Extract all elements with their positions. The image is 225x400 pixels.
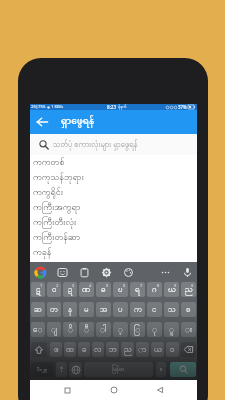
- button[interactable]: Numbers and symbols: [31, 362, 54, 377]
- staticText: 1: [40, 283, 43, 288]
- staticText: သတ်ပုံ စကားလုံးများ ရှာဖွေရန်: [53, 139, 138, 151]
- button[interactable]: ိ: [63, 322, 77, 337]
- button[interactable]: ကခုန်: [30, 245, 197, 260]
- button[interactable]: း: [181, 322, 196, 337]
- button[interactable]: Back: [151, 381, 169, 399]
- button[interactable]: ကကွရိုင်း: [30, 185, 197, 200]
- staticText: 37%: [178, 104, 187, 110]
- button[interactable]: ည: [181, 282, 196, 297]
- staticText: 9: [174, 283, 177, 288]
- button[interactable]: Back: [30, 110, 54, 134]
- button[interactable]: ျ: [47, 322, 61, 337]
- button[interactable]: Recent apps: [58, 381, 76, 399]
- button[interactable]: က: [130, 302, 145, 317]
- button[interactable]: ခ: [78, 342, 90, 357]
- staticText: ရှာဖွေရန်: [61, 112, 95, 132]
- button[interactable]: Voice input: [180, 265, 194, 279]
- button[interactable]: သ: [164, 302, 179, 317]
- staticText: း: [185, 324, 192, 336]
- button[interactable]: ထ: [64, 342, 76, 357]
- button[interactable]: ပ: [113, 302, 128, 317]
- button[interactable]: ကကြီးတီးလုံး: [30, 215, 197, 230]
- staticText: 25|756: [31, 104, 46, 110]
- staticText: ့: [118, 324, 123, 336]
- staticText: 0: [191, 283, 194, 288]
- button[interactable]: ဝ: [166, 342, 179, 357]
- staticText: မ: [84, 304, 89, 316]
- button[interactable]: Shift: [31, 342, 47, 357]
- button[interactable]: အ: [96, 302, 111, 317]
- staticText: ဝ: [52, 284, 57, 296]
- staticText: ည: [124, 344, 132, 356]
- button[interactable]: ကကုသန်ဘုရား: [30, 170, 197, 185]
- button[interactable]: ဘ: [106, 342, 119, 357]
- button[interactable]: ီ: [79, 322, 94, 337]
- staticText: င: [152, 304, 157, 316]
- button[interactable]: ာ: [136, 342, 149, 357]
- staticText: ဎ: [118, 284, 123, 296]
- button[interactable]: စ: [181, 302, 196, 317]
- staticText: ဓ: [101, 284, 106, 296]
- button[interactable]: င: [147, 302, 162, 317]
- button[interactable]: ကကြီးတန်ဆာ: [30, 230, 197, 245]
- staticText: ကခုန်: [33, 246, 52, 259]
- button[interactable]: ူ: [164, 322, 179, 337]
- button[interactable]: ကကတစ်: [30, 155, 197, 170]
- staticText: ူ: [169, 324, 174, 336]
- button[interactable]: ယ: [151, 342, 164, 357]
- button[interactable]: Period: [156, 362, 166, 377]
- button[interactable]: ဍ: [63, 282, 77, 297]
- button[interactable]: Search: [170, 362, 196, 377]
- staticText: ဘ: [109, 344, 117, 356]
- button[interactable]: ဓ: [96, 282, 111, 297]
- staticText: အ: [100, 304, 108, 316]
- button[interactable]: သတ်ပုံ စကားလုံးများ ရှာဖွေရန်: [30, 134, 197, 155]
- button[interactable]: ့: [113, 322, 128, 337]
- button[interactable]: ဋ: [31, 282, 45, 297]
- staticText: ျ: [51, 324, 58, 336]
- button[interactable]: ေ: [31, 322, 45, 337]
- button[interactable]: Change language: [69, 362, 82, 377]
- staticText: က: [134, 304, 142, 316]
- staticText: ထ: [66, 344, 74, 356]
- button[interactable]: Google: [33, 265, 47, 279]
- staticText: ကကြီးတီးလုံး: [33, 216, 77, 229]
- button[interactable]: Stickers: [55, 265, 69, 279]
- staticText: ဋ: [36, 284, 41, 296]
- staticText: ေ: [33, 324, 43, 336]
- staticText: ကကုသန်ဘုရား: [33, 171, 84, 184]
- button[interactable]: ဃ: [164, 282, 179, 297]
- staticText: ည: [185, 284, 193, 296]
- button[interactable]: More options: [158, 265, 172, 279]
- button[interactable]: ဝ: [47, 282, 61, 297]
- button[interactable]: ါ: [96, 322, 111, 337]
- button[interactable]: မြန်မာ: [84, 362, 153, 377]
- staticText: 8:23: [107, 104, 117, 110]
- button[interactable]: Themes: [121, 265, 135, 279]
- button[interactable]: ဂ: [147, 282, 162, 297]
- staticText: ီ: [84, 324, 89, 336]
- button[interactable]: ည: [121, 342, 134, 357]
- button[interactable]: မ: [79, 302, 94, 317]
- button[interactable]: Backspace: [181, 342, 196, 357]
- button[interactable]: Settings: [99, 265, 113, 279]
- button[interactable]: လ: [92, 342, 104, 357]
- button[interactable]: ဖ: [50, 342, 62, 357]
- button[interactable]: ြ: [130, 322, 145, 337]
- button[interactable]: Comma: [56, 362, 67, 377]
- staticText: 5: [106, 283, 109, 288]
- button[interactable]: တ: [47, 302, 61, 317]
- staticText: ဍ: [68, 284, 73, 296]
- staticText: ါ: [100, 324, 107, 336]
- button[interactable]: ဆ: [31, 302, 45, 317]
- button[interactable]: ရ: [130, 282, 145, 297]
- button[interactable]: Clipboard: [77, 265, 91, 279]
- button[interactable]: Home: [105, 381, 123, 399]
- staticText: ဝ: [170, 344, 175, 356]
- button[interactable]: ကကြီးအကွရာ: [30, 200, 197, 215]
- button[interactable]: န: [63, 302, 77, 317]
- staticText: ြ: [134, 324, 141, 336]
- button[interactable]: ဎ: [113, 282, 128, 297]
- button[interactable]: ု: [147, 322, 162, 337]
- button[interactable]: ဏ: [79, 282, 94, 297]
